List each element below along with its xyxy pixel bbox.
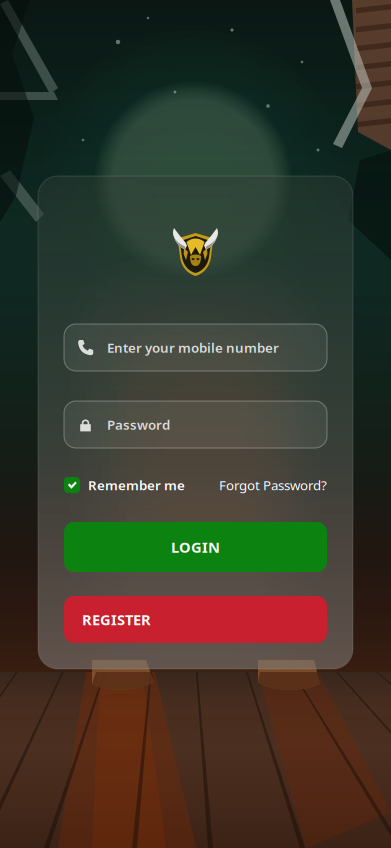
staticText: Forgot Password? <box>219 476 327 494</box>
button[interactable]: LOGIN <box>64 522 327 572</box>
staticText: Password <box>107 416 170 433</box>
button[interactable]: Forgot Password? <box>219 476 327 494</box>
button[interactable]: Remember me <box>64 476 185 494</box>
button[interactable]: REGISTER <box>64 596 327 643</box>
staticText: REGISTER <box>82 610 151 629</box>
staticText: Enter your mobile number <box>107 339 279 356</box>
staticText: Remember me <box>88 476 185 494</box>
staticText: LOGIN <box>171 537 220 557</box>
